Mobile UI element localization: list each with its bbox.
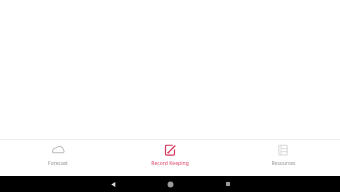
button[interactable]: Record Keeping	[115, 140, 225, 176]
staticText: Record Keeping	[151, 160, 189, 167]
button[interactable]: Forecast	[3, 140, 113, 176]
staticText: Resources	[271, 160, 296, 167]
staticText: Forecast	[48, 160, 68, 167]
button[interactable]: Home	[164, 178, 176, 190]
button[interactable]: Back	[107, 178, 119, 190]
button[interactable]: Recent apps	[222, 178, 234, 190]
button[interactable]: Resources	[228, 140, 338, 176]
